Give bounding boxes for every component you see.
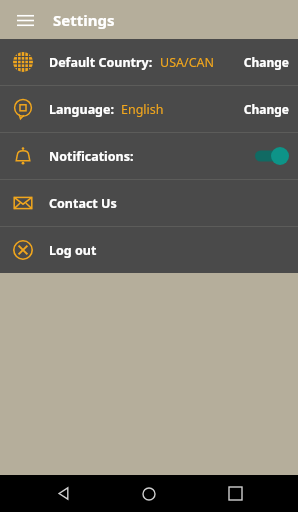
button[interactable]: Home: [127, 475, 171, 512]
other: Log out: [12, 239, 34, 261]
button[interactable]: Default country: [0, 39, 298, 85]
staticText: Language:: [49, 101, 114, 118]
staticText: Contact Us: [49, 195, 117, 212]
other: Contact us: [12, 192, 34, 214]
button[interactable]: Recent apps: [213, 475, 257, 512]
button[interactable]: Notifications: [0, 133, 298, 179]
button[interactable]: Log out: [0, 227, 298, 273]
button[interactable]: Back: [42, 475, 86, 512]
staticText: Change: [243, 54, 289, 70]
button[interactable]: Notifications toggle, on: [255, 147, 289, 165]
staticText: Log out: [49, 242, 97, 259]
staticText: Settings: [53, 10, 115, 30]
staticText: Default Country:: [49, 54, 153, 71]
staticText: USA/CAN: [160, 54, 215, 71]
button[interactable]: Language: [0, 86, 298, 132]
staticText: Change: [243, 101, 289, 117]
staticText: English: [121, 101, 164, 118]
staticText: Notifications:: [49, 148, 134, 165]
other: Notifications: [12, 145, 34, 167]
other: Default country: [12, 51, 34, 73]
other: Language: [12, 98, 34, 120]
button[interactable]: Contact us: [0, 180, 298, 226]
button[interactable]: Open navigation menu: [10, 5, 40, 35]
